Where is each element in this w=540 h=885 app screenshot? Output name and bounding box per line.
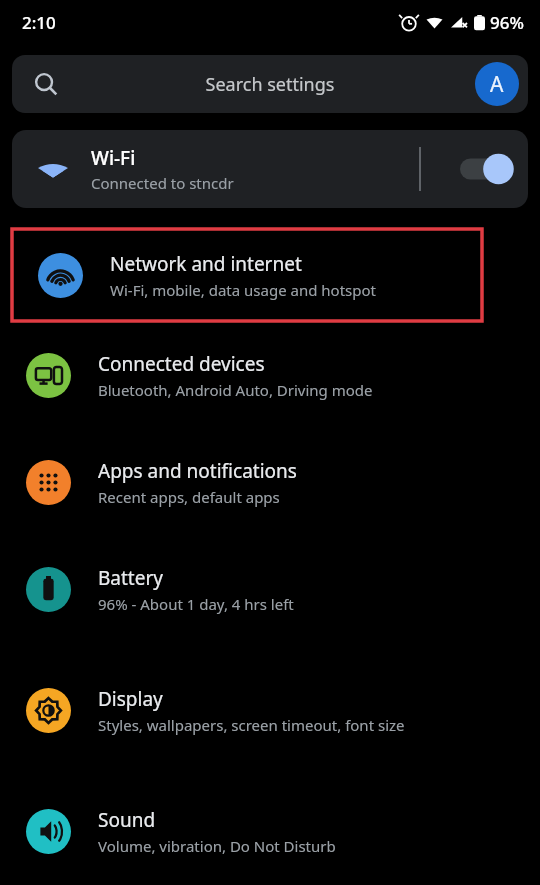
- staticText: Battery: [98, 565, 163, 591]
- staticText: Sound: [98, 807, 156, 833]
- button[interactable]: Connected devices: [0, 322, 540, 429]
- button[interactable]: Display: [0, 643, 540, 778]
- staticText: Network and internet: [110, 251, 302, 277]
- button[interactable]: Sound: [0, 778, 540, 885]
- button[interactable]: Battery: [0, 536, 540, 643]
- staticText: 96% - About 1 day, 4 hrs left: [98, 594, 294, 614]
- button[interactable]: Apps and notifications: [0, 429, 540, 536]
- staticText: Bluetooth, Android Auto, Driving mode: [98, 380, 373, 400]
- staticText: Connected devices: [98, 351, 265, 377]
- button[interactable]: Wi-Fi: [12, 130, 414, 208]
- button[interactable]: Search settings: [12, 55, 528, 113]
- staticText: Connected to stncdr: [91, 173, 234, 193]
- staticText: Search settings: [12, 72, 528, 97]
- staticText: Display: [98, 686, 163, 712]
- staticText: Recent apps, default apps: [98, 487, 280, 507]
- staticText: Wi-Fi, mobile, data usage and hotspot: [110, 280, 376, 300]
- button[interactable]: Wi-Fi toggle: [458, 147, 514, 191]
- staticText: Volume, vibration, Do Not Disturb: [98, 836, 336, 856]
- staticText: Wi-Fi: [91, 145, 136, 171]
- staticText: A: [490, 70, 504, 99]
- button[interactable]: Network and internet: [12, 228, 482, 322]
- staticText: Styles, wallpapers, screen timeout, font…: [98, 715, 405, 735]
- staticText: 96%: [490, 11, 524, 34]
- button[interactable]: Account: [475, 62, 519, 106]
- staticText: Apps and notifications: [98, 458, 297, 484]
- staticText: 2:10: [22, 11, 56, 34]
